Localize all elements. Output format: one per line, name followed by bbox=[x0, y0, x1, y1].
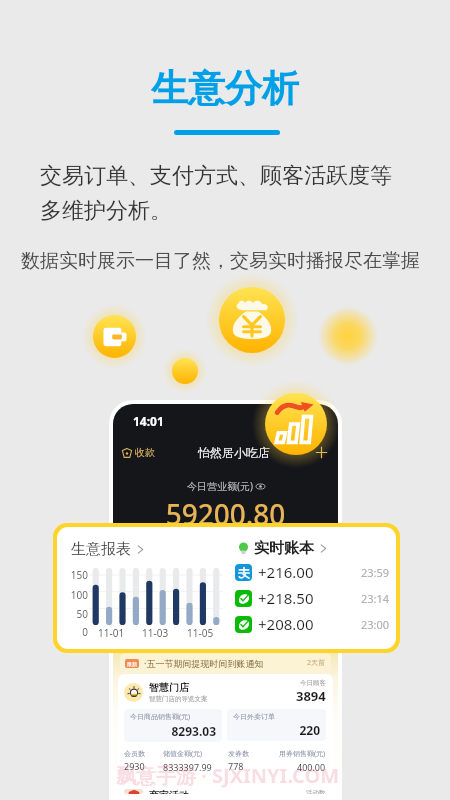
button[interactable]: 实时账本 bbox=[237, 539, 328, 558]
button[interactable]: +218.50 bbox=[235, 588, 390, 608]
staticText: 实时账本 bbox=[254, 539, 314, 558]
staticText: 23:00 bbox=[361, 617, 390, 632]
button[interactable]: 收款 bbox=[122, 446, 155, 459]
button[interactable]: 最新 bbox=[120, 653, 331, 672]
staticText: 储值金额(元) bbox=[163, 749, 203, 759]
staticText: 今日外卖订单 bbox=[233, 712, 275, 721]
staticText: 今日顾客 bbox=[300, 679, 326, 687]
staticText: 8293.03 bbox=[130, 723, 216, 739]
staticText: 2930 bbox=[124, 760, 145, 772]
button[interactable]: +216.00 bbox=[235, 562, 390, 582]
button[interactable]: 今日外卖订单 bbox=[227, 709, 326, 741]
staticText: 生意分析 bbox=[0, 65, 450, 112]
staticText: 11-03 bbox=[142, 626, 169, 640]
staticText: 11-01 bbox=[98, 626, 125, 640]
staticText: 收款 bbox=[135, 446, 155, 459]
staticText: +216.00 bbox=[258, 562, 314, 582]
staticText: 50 bbox=[63, 607, 88, 621]
staticText: 0 bbox=[63, 625, 88, 639]
staticText: +218.50 bbox=[258, 588, 314, 608]
button[interactable]: 商家活动 bbox=[118, 784, 333, 800]
staticText: 11-05 bbox=[187, 626, 214, 640]
staticText: 用券销售额(元) bbox=[279, 749, 326, 759]
staticText: 商家活动 bbox=[149, 789, 189, 794]
staticText: 生意报表 bbox=[71, 540, 131, 559]
staticText: 100 bbox=[63, 588, 88, 602]
staticText: 220 bbox=[233, 722, 320, 738]
staticText: 23:14 bbox=[361, 591, 390, 606]
staticText: 飘意手游 · SJXINYI.COM bbox=[116, 762, 340, 789]
staticText: 14:01 bbox=[133, 413, 164, 429]
staticText: 150 bbox=[63, 568, 88, 582]
button[interactable]: 生意报表 bbox=[71, 540, 145, 559]
staticText: 智慧门店的导览文案 bbox=[149, 695, 208, 703]
staticText: 今日商品销售额(元) bbox=[130, 712, 191, 722]
staticText: 23:59 bbox=[361, 565, 390, 580]
button[interactable]: 今日商品销售额(元) bbox=[124, 709, 222, 742]
staticText: 最新 bbox=[127, 661, 137, 667]
staticText: 智慧门店 bbox=[149, 681, 189, 694]
button[interactable]: 智慧门店 bbox=[118, 674, 333, 779]
staticText: 778 bbox=[228, 760, 244, 772]
staticText: 交易订单、支付方式、顾客活跃度等 多维护分析。 bbox=[40, 162, 392, 225]
staticText: 3894 bbox=[296, 687, 326, 705]
staticText: 8333397.99 bbox=[163, 761, 212, 773]
staticText: 59200.80 bbox=[113, 495, 338, 533]
button[interactable]: +208.00 bbox=[235, 614, 390, 634]
staticText: +208.00 bbox=[258, 614, 314, 634]
button[interactable]: Add bbox=[314, 445, 329, 460]
staticText: 今日营业额(元) bbox=[187, 479, 253, 493]
staticText: 会员数 bbox=[124, 749, 145, 758]
staticText: 怡然居小吃店 bbox=[198, 445, 270, 460]
staticText: 活动数 bbox=[306, 789, 326, 794]
staticText: 400.00 bbox=[297, 761, 326, 773]
staticText: 数据实时展示一目了然，交易实时播报尽在掌握 bbox=[21, 249, 420, 273]
staticText: ·五一节期间提现时间到账通知 bbox=[144, 657, 264, 669]
staticText: 2天前 bbox=[307, 658, 326, 668]
staticText: 发券数 bbox=[228, 749, 249, 758]
